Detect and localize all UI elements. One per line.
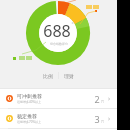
button[interactable]: 稳定推荐 <box>0 109 117 128</box>
staticText: 近期增多40%以上 <box>17 100 41 104</box>
staticText: 综合指数评分 <box>50 42 68 46</box>
staticText: ° <box>71 21 74 28</box>
staticText: 2 <box>94 93 100 105</box>
button[interactable]: 理财 <box>59 73 79 79</box>
staticText: 理财 <box>64 73 74 79</box>
other: 查看详情 <box>107 117 111 121</box>
staticText: 可冲刺推荐 <box>17 93 42 99</box>
button[interactable]: 比例 <box>38 73 58 79</box>
staticText: 稳定推荐 <box>17 113 37 119</box>
staticText: 3 <box>94 113 100 125</box>
staticText: 688 <box>43 20 71 42</box>
staticText: 比例 <box>43 73 53 79</box>
other: 查看详情 <box>107 97 111 101</box>
staticText: 只 <box>101 119 104 123</box>
button[interactable]: 可冲刺推荐 <box>0 89 117 108</box>
staticText: 近期增多70%以上 <box>17 120 41 124</box>
staticText: 只 <box>101 99 104 103</box>
